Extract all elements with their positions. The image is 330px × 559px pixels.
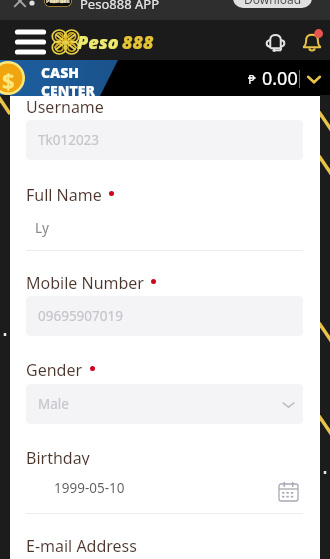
- button[interactable]: ₱: [248, 66, 322, 91]
- staticText: Mobile Number: [26, 272, 144, 290]
- staticText: Download: [244, 0, 302, 7]
- button[interactable]: Ly: [26, 212, 303, 244]
- staticText: 1999-05-10: [54, 479, 125, 497]
- staticText: $: [2, 65, 15, 95]
- button[interactable]: Close banner: [9, 0, 31, 11]
- staticText: Tk012023: [38, 131, 100, 149]
- staticText: Birthday: [26, 447, 90, 465]
- button[interactable]: Customer support: [265, 31, 286, 52]
- staticText: 09695907019: [38, 307, 123, 325]
- staticText: Gender: [26, 359, 83, 377]
- button[interactable]: Tk012023: [26, 120, 303, 160]
- staticText: ₱: [248, 70, 256, 88]
- staticText: Peso 888: [46, 0, 70, 4]
- button[interactable]: Peso 888: [44, 0, 72, 7]
- staticText: E-mail Address: [26, 535, 137, 553]
- staticText: CASH: [41, 63, 80, 82]
- button[interactable]: 1999-05-10: [26, 472, 303, 504]
- staticText: Male: [38, 395, 69, 413]
- button[interactable]: Male: [26, 384, 303, 424]
- button[interactable]: Download: [233, 0, 312, 8]
- staticText: CENTER: [41, 81, 95, 99]
- button[interactable]: Menu: [14, 24, 47, 56]
- staticText: 0.00: [262, 66, 298, 91]
- staticText: 888: [122, 30, 154, 55]
- staticText: Peso: [77, 30, 119, 55]
- staticText: Peso888 APP: [80, 0, 160, 13]
- button[interactable]: 09695907019: [26, 296, 303, 336]
- staticText: Ly: [35, 219, 49, 237]
- button[interactable]: Notifications: [301, 30, 323, 52]
- staticText: Username: [26, 96, 104, 114]
- staticText: Full Name: [26, 184, 102, 202]
